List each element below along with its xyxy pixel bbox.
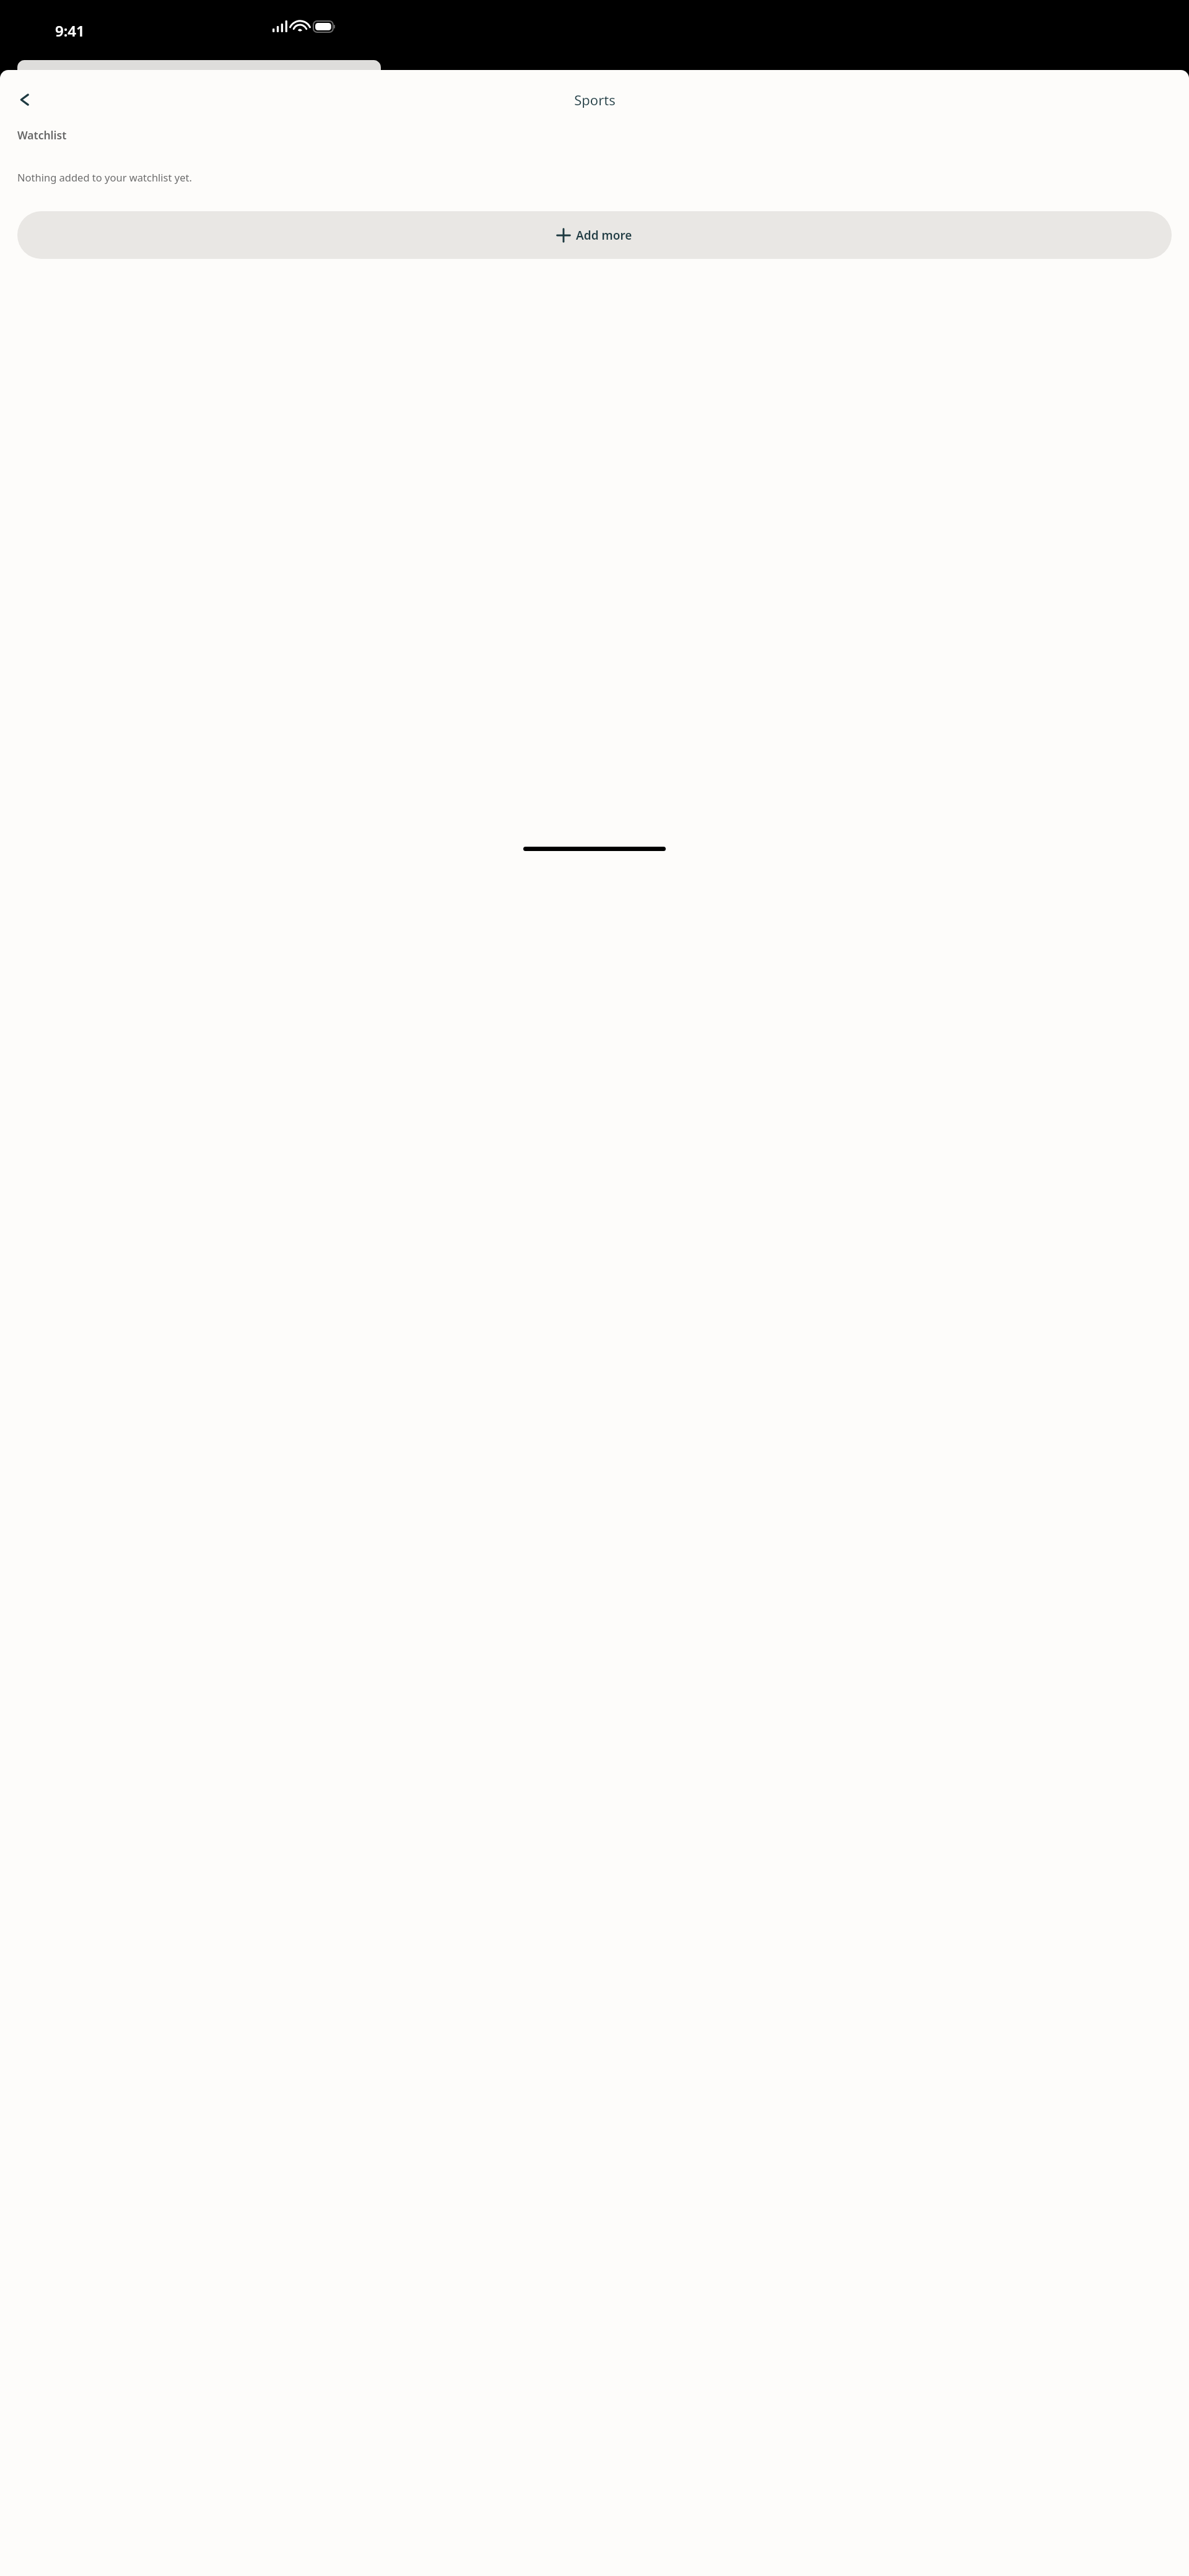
staticText: 9:41: [55, 20, 85, 41]
button[interactable]: Back: [10, 85, 40, 115]
staticText: Nothing added to your watchlist yet.: [17, 170, 192, 184]
staticText: Watchlist: [17, 128, 67, 142]
staticText: Add more: [576, 227, 632, 243]
staticText: Sports: [574, 90, 616, 108]
button[interactable]: Add more: [17, 211, 1172, 259]
